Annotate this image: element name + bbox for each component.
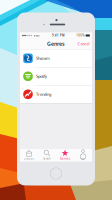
button[interactable]: Trending [20, 85, 92, 103]
button[interactable]: Spotify [20, 67, 92, 85]
button[interactable]: Me [74, 148, 92, 161]
staticText: 100% [76, 34, 84, 37]
staticText: Genres [60, 157, 70, 160]
staticText: Spotify [36, 74, 47, 79]
button[interactable]: Genres [56, 148, 74, 161]
staticText: Search [43, 157, 51, 160]
button[interactable]: Discover [20, 148, 38, 161]
staticText: Genres [47, 40, 65, 47]
staticText: Trending [36, 92, 51, 97]
staticText: Shazam [36, 56, 50, 61]
staticText: AT&T [34, 34, 40, 37]
staticText: 9:41 PM [52, 34, 64, 37]
staticText: Me [81, 157, 85, 160]
button[interactable]: Shazam [20, 49, 92, 67]
button[interactable]: Cancel [75, 39, 92, 48]
button[interactable]: Search [38, 148, 56, 161]
staticText: Cancel [77, 41, 89, 46]
staticText: Discover [23, 157, 34, 160]
